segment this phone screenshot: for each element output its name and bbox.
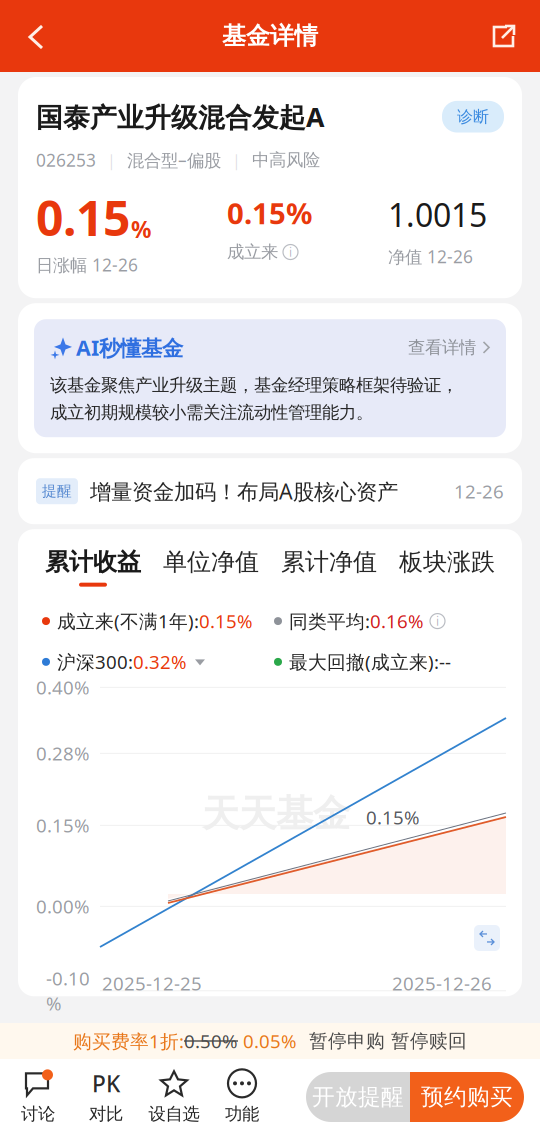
button[interactable]: 板块涨跌 bbox=[388, 547, 506, 587]
staticText: 0.16% bbox=[370, 609, 424, 633]
staticText: 1.0015 bbox=[388, 193, 487, 236]
staticText: 0.15% bbox=[36, 813, 90, 838]
staticText: 0.50% bbox=[184, 1029, 238, 1053]
button[interactable]: 设自选 bbox=[140, 1066, 208, 1128]
staticText: % bbox=[131, 214, 151, 244]
staticText: 2025-12-25 bbox=[102, 971, 202, 996]
staticText: 设自选 bbox=[148, 1103, 199, 1125]
staticText: 同类平均: bbox=[289, 609, 370, 633]
staticText: 板块涨跌 bbox=[399, 547, 495, 577]
staticText: 成立初期规模较小需关注流动性管理能力。 bbox=[50, 402, 373, 423]
staticText: 0.32% bbox=[133, 649, 187, 674]
staticText: 对比 bbox=[89, 1103, 123, 1125]
button[interactable]: 提醒 bbox=[18, 458, 522, 524]
staticText: 累计净值 bbox=[281, 547, 377, 577]
staticText: 该基金聚焦产业升级主题，基金经理策略框架待验证， bbox=[50, 375, 458, 396]
staticText: 天天基金 bbox=[202, 791, 350, 837]
staticText: 讨论 bbox=[21, 1103, 55, 1125]
staticText: 开放提醒 bbox=[312, 1083, 404, 1111]
staticText: 购买费率1折: bbox=[73, 1029, 184, 1053]
button[interactable]: 预约购买 bbox=[410, 1072, 524, 1122]
staticText: i bbox=[436, 613, 439, 629]
staticText: 0.15 bbox=[36, 185, 130, 249]
staticText: 026253 bbox=[36, 148, 96, 171]
staticText: 累计收益 bbox=[45, 547, 141, 577]
staticText: 0.40% bbox=[36, 675, 90, 700]
staticText: 日涨幅 12-26 bbox=[36, 253, 138, 276]
button[interactable]: 功能 bbox=[208, 1066, 276, 1128]
button[interactable]: PK bbox=[72, 1066, 140, 1128]
staticText: PK bbox=[92, 1068, 120, 1098]
button[interactable]: 单位净值 bbox=[152, 547, 270, 587]
staticText: 净值 12-26 bbox=[388, 245, 473, 268]
staticText: | bbox=[232, 149, 241, 170]
staticText: 预约购买 bbox=[421, 1083, 513, 1111]
staticText: 查看详情 bbox=[408, 337, 476, 358]
staticText: 最大回撤(成立来): bbox=[289, 649, 439, 674]
button[interactable]: 累计净值 bbox=[270, 547, 388, 587]
button[interactable]: 讨论 bbox=[4, 1066, 72, 1128]
staticText: 混合型–偏股 bbox=[127, 148, 221, 171]
staticText: 2025-12-26 bbox=[392, 971, 492, 996]
button[interactable]: Expand chart bbox=[474, 925, 500, 951]
staticText: 沪深300: bbox=[57, 649, 133, 674]
staticText: 功能 bbox=[225, 1103, 259, 1125]
staticText: 基金详情 bbox=[222, 21, 318, 51]
staticText: 国泰产业升级混合发起A bbox=[36, 99, 324, 134]
button[interactable]: 累计收益 bbox=[34, 547, 152, 587]
button[interactable]: Share bbox=[480, 13, 526, 59]
staticText: 提醒 bbox=[42, 482, 72, 500]
staticText: 暂停申购 暂停赎回 bbox=[297, 1029, 467, 1052]
staticText: | bbox=[107, 149, 116, 170]
staticText: 12-26 bbox=[454, 479, 504, 504]
button[interactable]: 查看详情 bbox=[408, 337, 490, 358]
staticText: 增量资金加码！布局A股核心资产 bbox=[90, 477, 398, 505]
staticText: 0.05% bbox=[238, 1029, 297, 1053]
staticText: 0.00% bbox=[36, 894, 90, 919]
staticText: 单位净值 bbox=[163, 547, 259, 577]
staticText: 成立来(不满1年): bbox=[57, 609, 199, 633]
staticText: 诊断 bbox=[457, 107, 489, 127]
staticText: 0.15% bbox=[199, 609, 253, 633]
staticText: 0.15% bbox=[366, 805, 420, 830]
staticText: 0.15% bbox=[227, 193, 312, 232]
staticText: AI秒懂基金 bbox=[76, 333, 183, 362]
staticText: 中高风险 bbox=[252, 149, 320, 171]
staticText: -- bbox=[439, 649, 451, 674]
staticText: -0.10% bbox=[46, 966, 90, 1016]
staticText: 0.28% bbox=[36, 741, 90, 766]
button[interactable]: Back bbox=[14, 13, 60, 59]
button[interactable]: 开放提醒 bbox=[306, 1072, 410, 1122]
staticText: 成立来 bbox=[227, 241, 278, 263]
staticText: i bbox=[289, 244, 292, 260]
button[interactable]: 诊断 bbox=[442, 101, 504, 133]
